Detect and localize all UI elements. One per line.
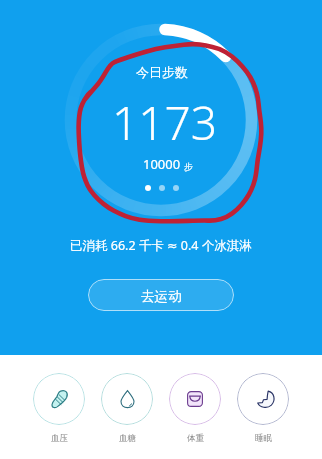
staticText: 血糖	[119, 433, 136, 444]
staticText: 已消耗 66.2 千卡 ≈ 0.4 个冰淇淋	[70, 237, 252, 254]
staticText: 去运动	[141, 288, 182, 305]
staticText: 1173	[112, 91, 218, 154]
button[interactable]: 血压	[33, 373, 85, 425]
button[interactable]: 睡眠	[237, 373, 289, 425]
button[interactable]: 体重	[169, 373, 221, 425]
staticText: 今日步数	[136, 64, 188, 80]
staticText: 10000	[143, 155, 181, 173]
staticText: 步	[184, 161, 193, 172]
button[interactable]: 去运动	[88, 279, 234, 311]
staticText: 体重	[187, 433, 204, 444]
staticText: 血压	[51, 433, 68, 444]
staticText: 睡眠	[255, 433, 272, 444]
button[interactable]: 血糖	[101, 373, 153, 425]
